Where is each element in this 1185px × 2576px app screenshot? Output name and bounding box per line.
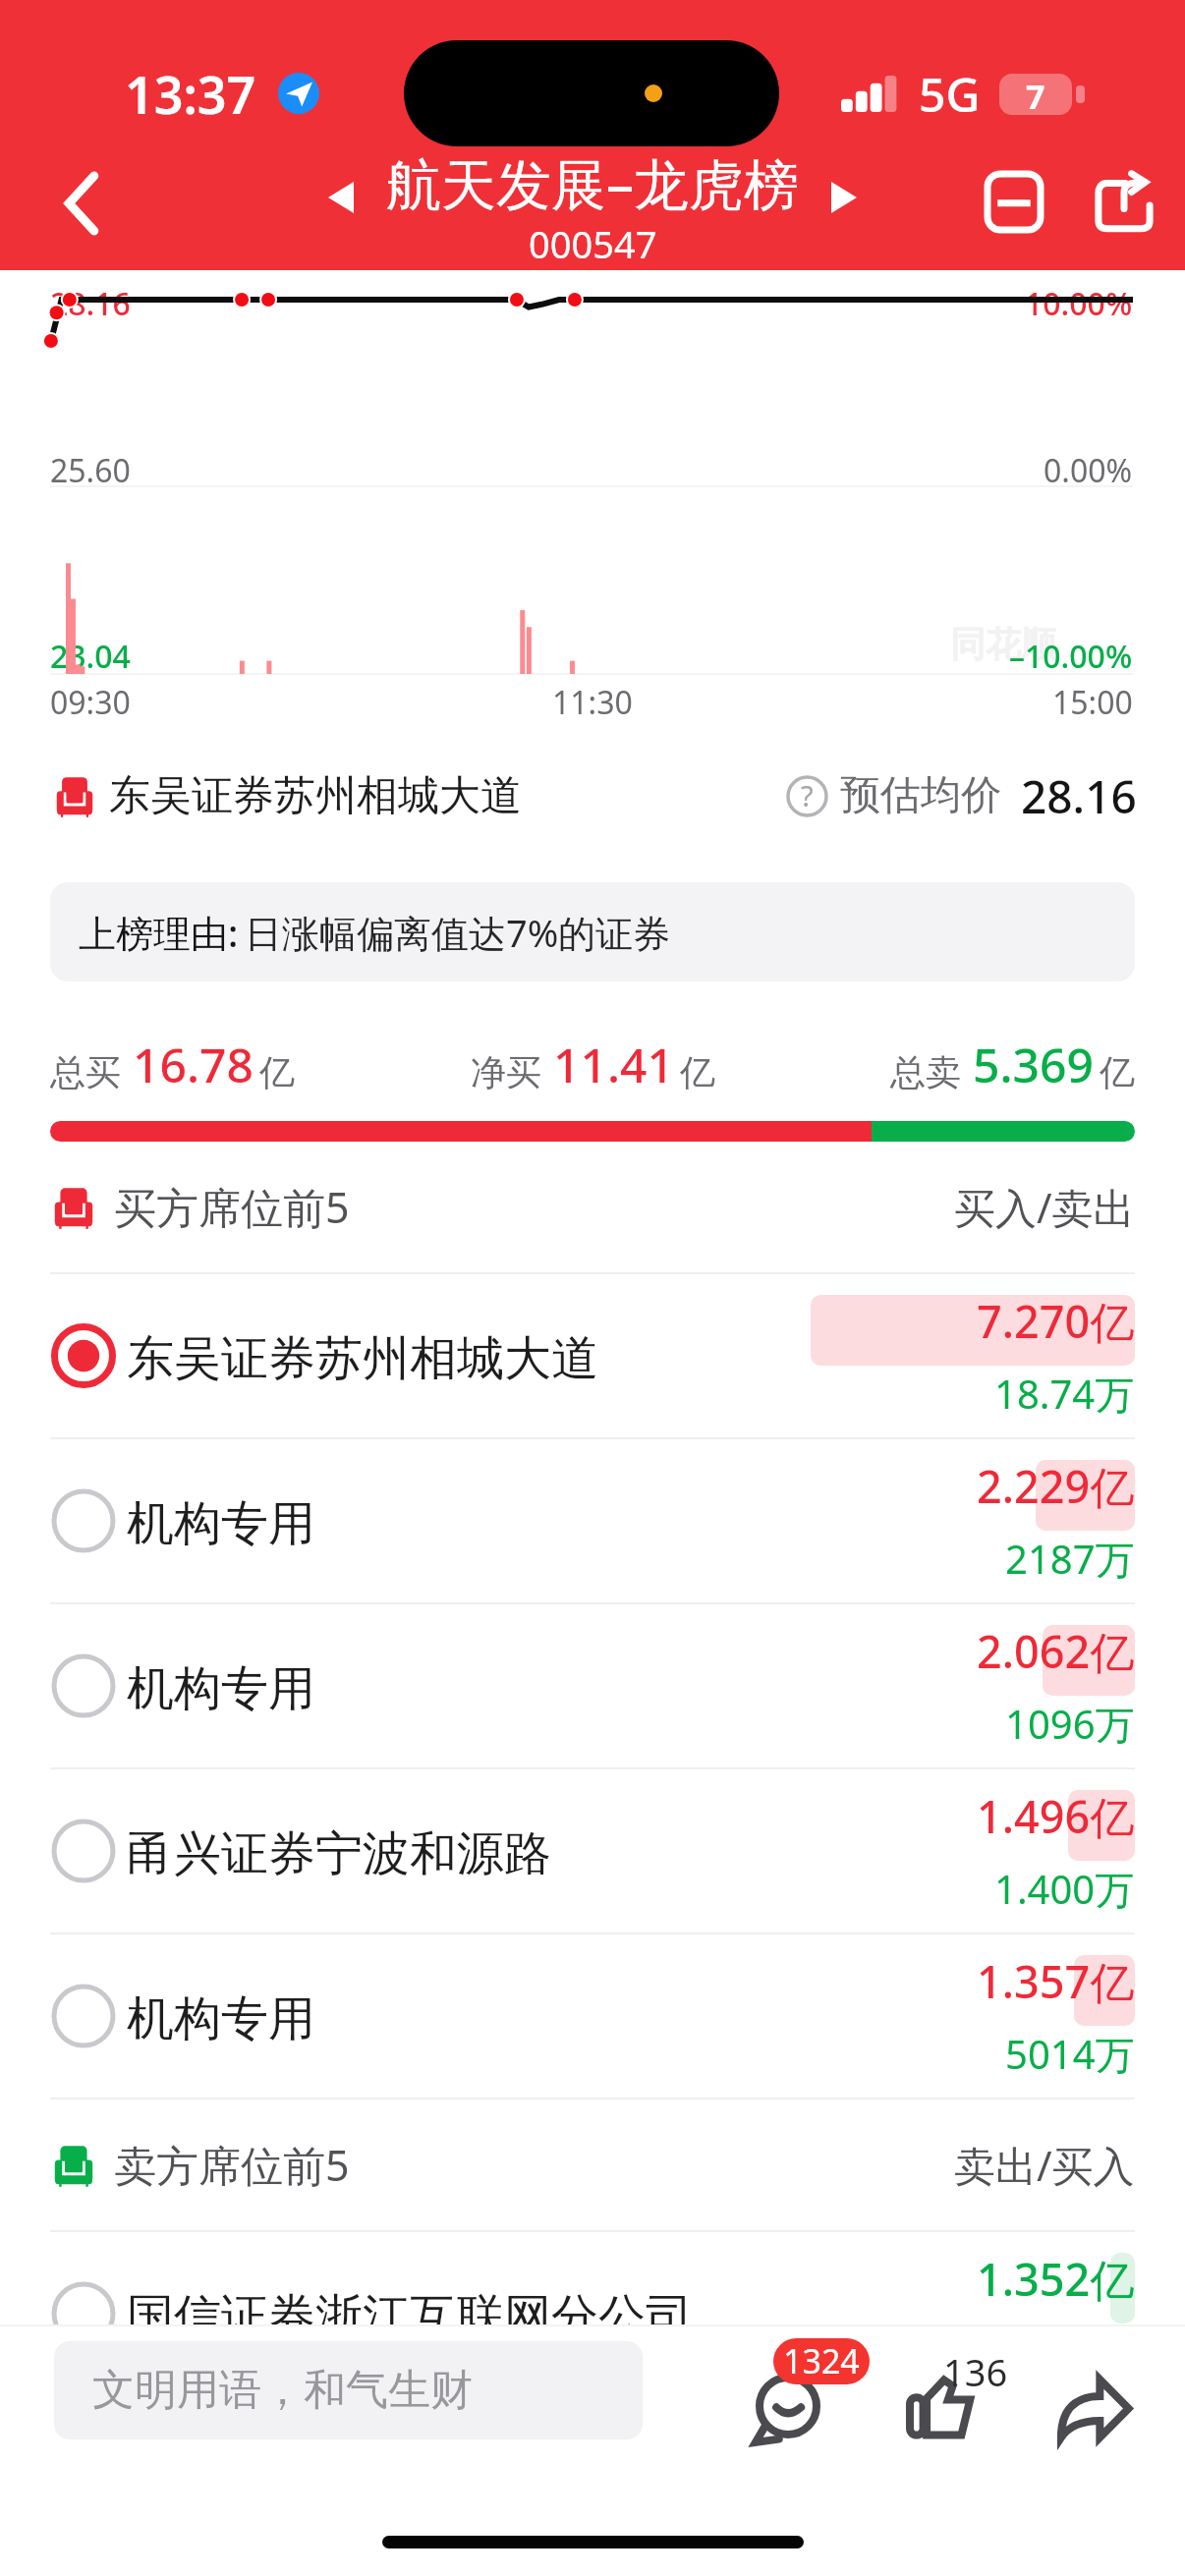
button[interactable]: 机构专用 xyxy=(0,1934,1185,2098)
staticText: 5G xyxy=(919,62,981,126)
staticText: 23.04 xyxy=(50,635,131,678)
staticText: 日涨幅偏离值达7%的证券 xyxy=(245,907,671,958)
staticText: 11:30 xyxy=(552,681,633,724)
staticText: 13:37 xyxy=(125,59,256,129)
staticText: 7 xyxy=(1026,74,1045,115)
staticText: 2.229亿 xyxy=(977,1456,1135,1516)
staticText: 1324 xyxy=(783,2338,860,2383)
button[interactable]: 甬兴证券宁波和源路 xyxy=(0,1769,1185,1932)
staticText: 136 xyxy=(943,2346,1008,2397)
staticText: 机构专用 xyxy=(127,1989,315,2048)
staticText: 买方席位前5 xyxy=(114,1178,350,1236)
staticText: 同花顺 xyxy=(950,622,1056,666)
staticText: 1.352亿 xyxy=(977,2249,1135,2309)
staticText: 16.78 xyxy=(133,1033,254,1096)
staticText: 甬兴证券宁波和源路 xyxy=(127,1824,551,1883)
staticText: 上榜理由: xyxy=(79,907,239,958)
button[interactable]: Next stock xyxy=(808,161,880,234)
staticText: 亿 xyxy=(1100,1050,1135,1094)
staticText: 卖方席位前5 xyxy=(114,2136,350,2194)
staticText: 1.357亿 xyxy=(977,1951,1135,2011)
staticText: 1.400万 xyxy=(994,1862,1135,1916)
staticText: 预估均价 xyxy=(840,770,1001,821)
button[interactable]: Minimize xyxy=(959,146,1069,256)
staticText: 东吴证券苏州相城大道 xyxy=(109,770,522,822)
staticText: 东吴证券苏州相城大道 xyxy=(127,1329,598,1388)
button[interactable]: 上榜理由: xyxy=(50,882,1135,981)
staticText: 25.60 xyxy=(50,449,131,492)
button[interactable]: 国信证券浙江互联网分公司 xyxy=(0,2232,1185,2395)
staticText: 2.062亿 xyxy=(977,1621,1135,1681)
staticText: 5.369 xyxy=(973,1033,1094,1096)
button[interactable]: Previous stock xyxy=(305,161,377,234)
button[interactable]: 买方席位前5 xyxy=(0,1142,1185,1272)
staticText: 买入/卖出 xyxy=(954,1179,1135,1235)
staticText: 18.74万 xyxy=(994,1367,1135,1421)
button[interactable]: Like xyxy=(894,2326,1016,2454)
staticText: –10.00% xyxy=(1009,635,1133,678)
staticText: 机构专用 xyxy=(127,1659,315,1718)
staticText: 7.270亿 xyxy=(977,1291,1135,1351)
staticText: 净买 xyxy=(471,1050,541,1094)
button[interactable]: Back xyxy=(28,149,136,257)
button[interactable]: 东吴证券苏州相城大道 xyxy=(0,722,1185,860)
button[interactable]: 东吴证券苏州相城大道 xyxy=(0,1274,1185,1437)
staticText: 0.00% xyxy=(1044,449,1133,492)
staticText: 1.496亿 xyxy=(977,1786,1135,1846)
staticText: 000547 xyxy=(529,218,657,266)
staticText: 亿 xyxy=(680,1050,715,1094)
staticText: 总卖 xyxy=(890,1050,961,1094)
staticText: ? xyxy=(801,776,814,814)
staticText: 09:30 xyxy=(50,681,131,724)
staticText: 1096万 xyxy=(1005,1697,1135,1751)
staticText: 8013万 xyxy=(1005,2324,1135,2379)
staticText: 文明用语，和气生财 xyxy=(92,2364,473,2417)
staticText: 28.16 xyxy=(1021,765,1137,827)
staticText: 卖出/买入 xyxy=(954,2137,1135,2193)
staticText: 28.16 xyxy=(50,282,131,325)
staticText: 10.00% xyxy=(1025,282,1133,325)
button[interactable]: 文明用语，和气生财 xyxy=(54,2341,643,2439)
button[interactable]: Share xyxy=(1069,146,1179,256)
staticText: 航天发展–龙虎榜 xyxy=(386,145,799,220)
staticText: 亿 xyxy=(259,1050,295,1094)
staticText: 2187万 xyxy=(1005,1532,1135,1586)
button[interactable]: 机构专用 xyxy=(0,1439,1185,1602)
button[interactable]: Share xyxy=(1040,2326,1148,2454)
button[interactable]: 机构专用 xyxy=(0,1604,1185,1767)
staticText: 11.41 xyxy=(553,1033,674,1096)
staticText: 5014万 xyxy=(1005,2027,1135,2081)
staticText: 国信证券浙江互联网分公司 xyxy=(127,2287,693,2346)
staticText: 总买 xyxy=(50,1050,121,1094)
button[interactable]: 卖方席位前5 xyxy=(0,2100,1185,2230)
staticText: 机构专用 xyxy=(127,1494,315,1553)
staticText: 15:00 xyxy=(1052,681,1133,724)
button[interactable]: Comments xyxy=(749,2326,871,2454)
